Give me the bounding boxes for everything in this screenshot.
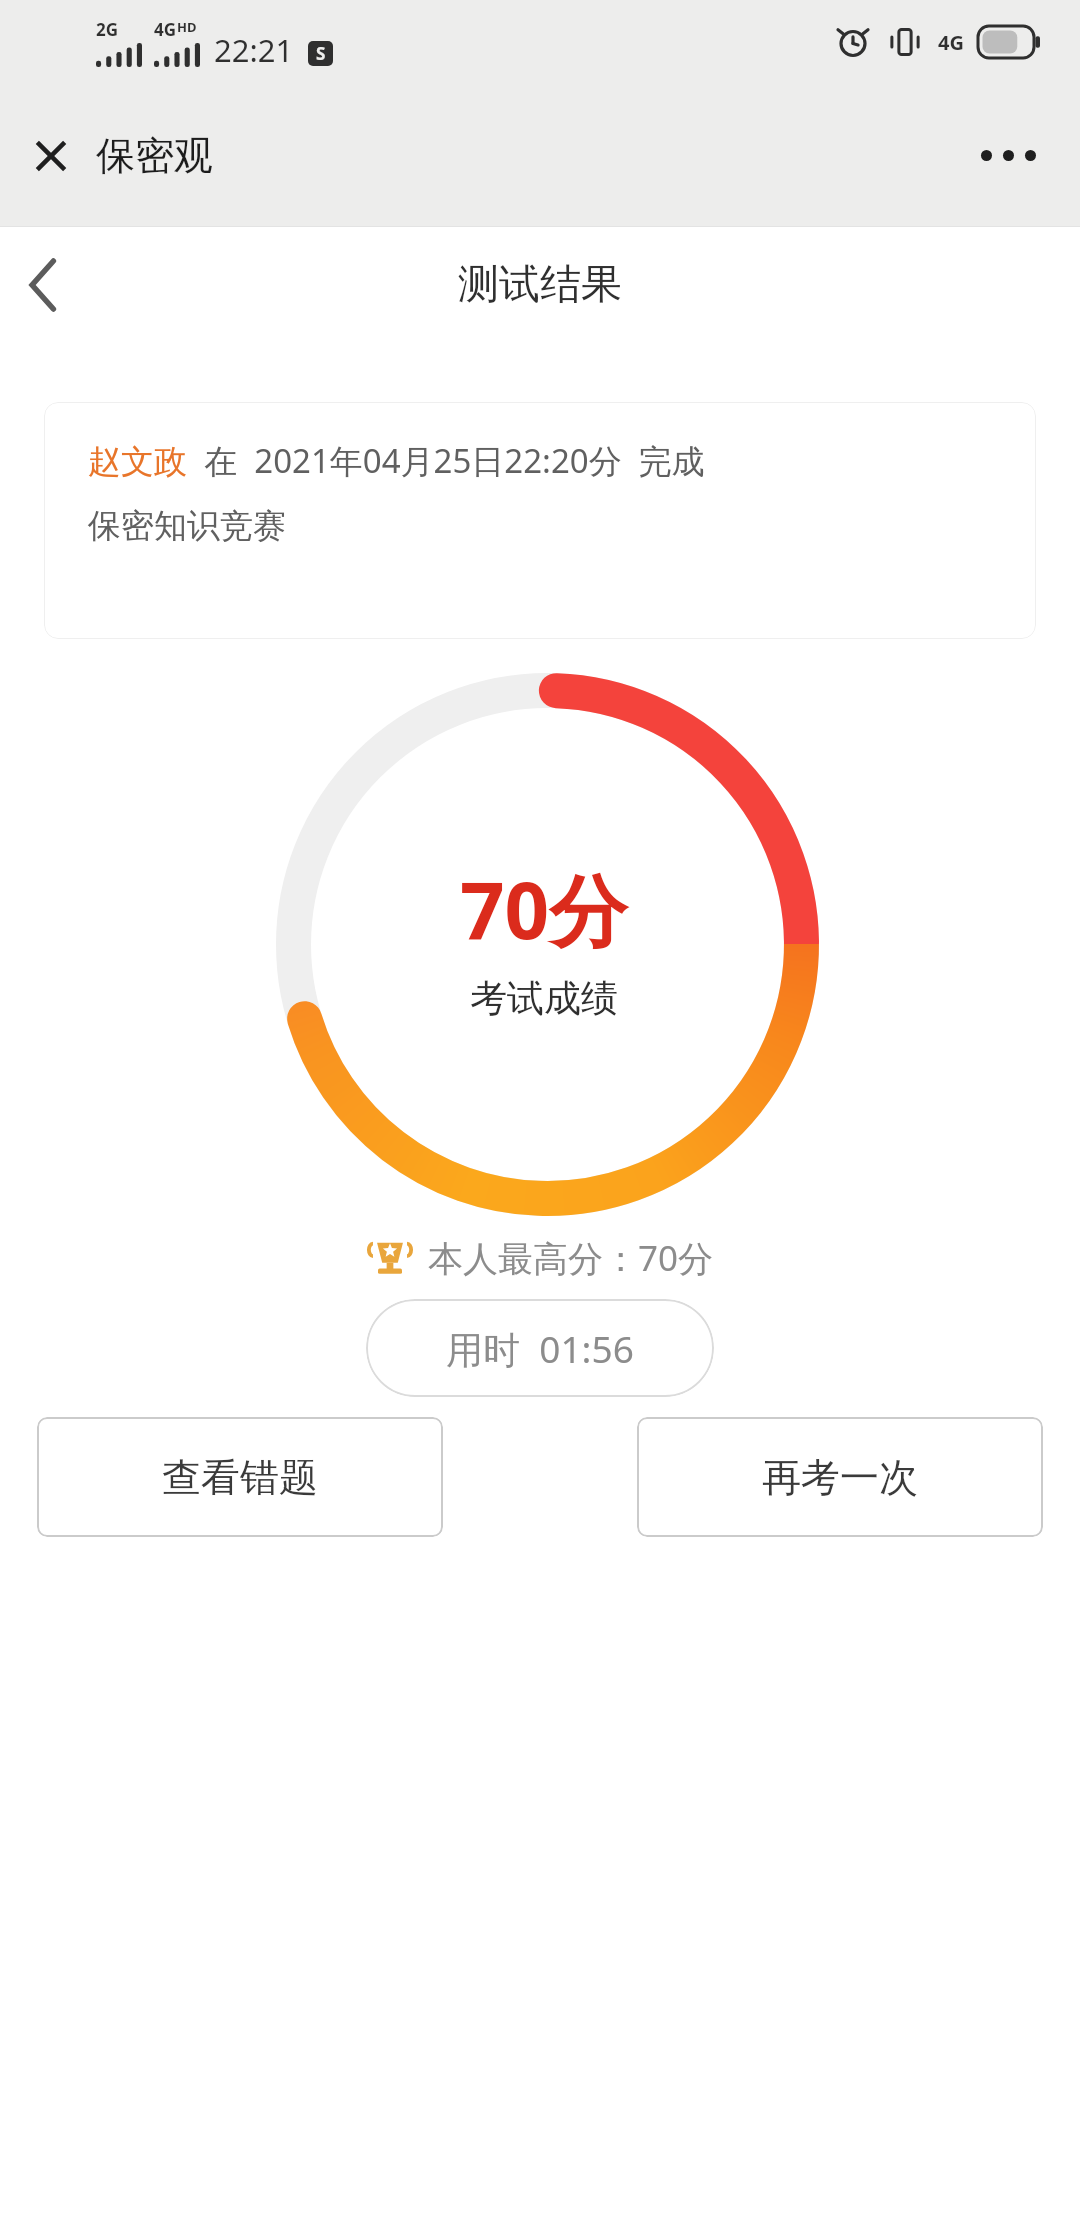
staticText: 70分 (460, 856, 628, 963)
button[interactable]: Back (14, 245, 72, 325)
staticText: 4G (154, 18, 177, 41)
other: Battery 74 percent (978, 26, 1040, 58)
button[interactable]: 用时 01:56 (366, 1299, 714, 1397)
staticText: 2G (96, 18, 119, 41)
staticText: 保密观 (96, 131, 213, 180)
staticText: 22:21 (214, 29, 294, 71)
staticText: 本人最高分：70分 (428, 1234, 714, 1282)
other: Close (32, 137, 70, 175)
button[interactable]: 再考一次 (637, 1417, 1043, 1537)
button[interactable]: More options (967, 136, 1050, 175)
staticText: 查看错题 (162, 1453, 318, 1502)
button[interactable]: 赵文政 在 2021年04月25日22:20分 完成 保密知识竞赛 (44, 402, 1036, 639)
staticText: 用时 01:56 (446, 1323, 634, 1374)
staticText: HD (177, 18, 197, 36)
staticText: 赵文政 在 2021年04月25日22:20分 完成 保密知识竞赛 (88, 438, 705, 547)
staticText: S (316, 42, 326, 65)
other: Alarm (838, 27, 868, 57)
staticText: 再考一次 (762, 1453, 918, 1502)
button[interactable]: Close (20, 123, 225, 188)
staticText: 4G (938, 29, 964, 56)
staticText: 测试结果 (458, 259, 622, 311)
staticText: 考试成绩 (470, 975, 618, 1022)
button[interactable]: 查看错题 (37, 1417, 443, 1537)
